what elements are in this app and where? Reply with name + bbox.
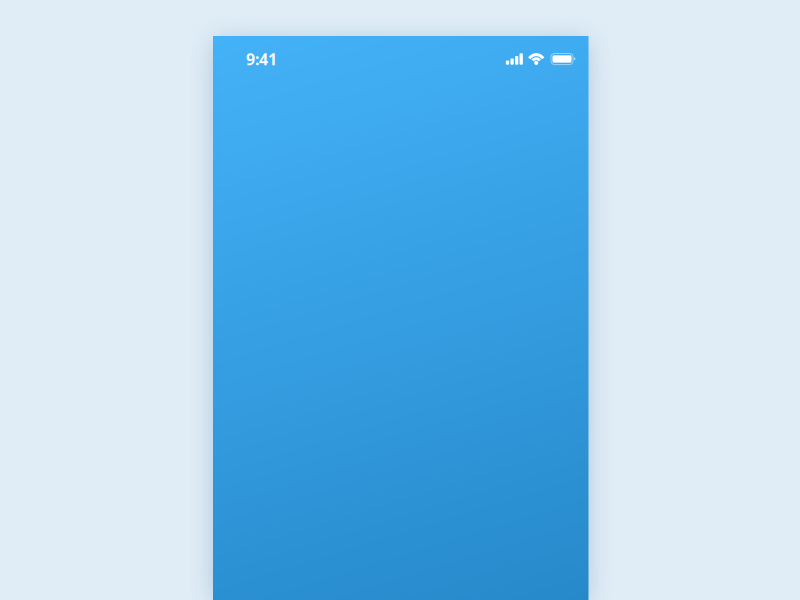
staticText: 9:41 (246, 48, 277, 70)
